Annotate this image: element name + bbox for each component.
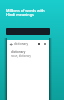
button[interactable]: Bookmark — [37, 42, 41, 46]
staticText: Millions of words with Hindi meanings — [6, 8, 45, 17]
button[interactable]: More options — [43, 42, 47, 46]
staticText: dictionary — [11, 50, 26, 54]
staticText: noun, dictionary — [11, 54, 31, 58]
button[interactable]: Search — [6, 28, 50, 35]
button[interactable]: Back — [9, 42, 13, 46]
staticText: dictionary — [14, 42, 29, 46]
